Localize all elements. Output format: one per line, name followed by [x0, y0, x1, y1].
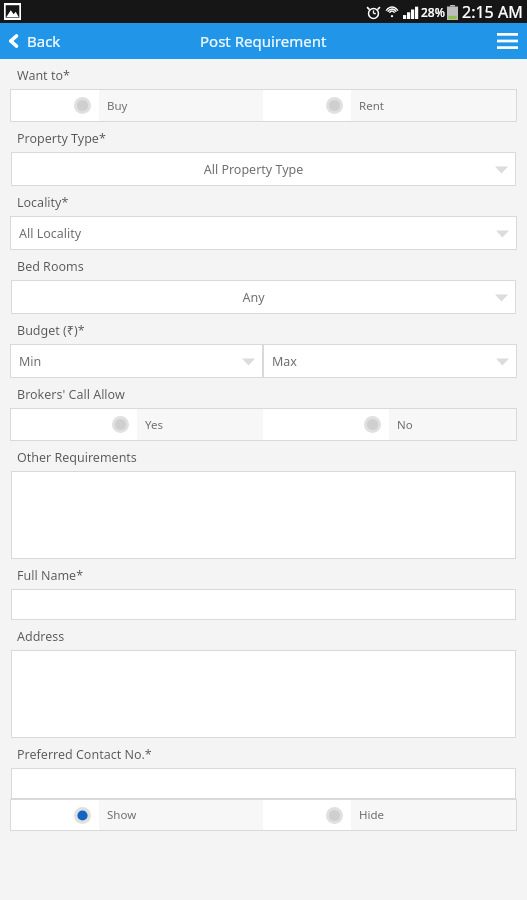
- staticText: Yes: [145, 417, 163, 433]
- staticText: Max: [272, 353, 496, 370]
- staticText: Rent: [359, 98, 384, 114]
- button[interactable]: Show: [11, 800, 263, 830]
- button[interactable]: Max: [264, 345, 516, 377]
- staticText: Hide: [359, 807, 385, 823]
- staticText: Any: [12, 289, 495, 306]
- staticText: No: [397, 417, 413, 433]
- button[interactable]: Buy: [11, 90, 263, 121]
- staticText: Bed Rooms: [17, 258, 84, 275]
- staticText: Preferred Contact No.*: [17, 746, 152, 763]
- staticText: Show: [107, 807, 137, 823]
- staticText: 28%: [421, 4, 445, 20]
- staticText: Post Requirement: [200, 31, 327, 51]
- button[interactable]: Menu: [488, 23, 527, 59]
- button[interactable]: Hide: [263, 800, 516, 830]
- staticText: All Property Type: [12, 161, 495, 178]
- staticText: Min: [19, 353, 242, 370]
- staticText: Back: [27, 31, 61, 51]
- button[interactable]: Rent: [263, 90, 516, 121]
- staticText: Buy: [107, 98, 128, 114]
- button[interactable]: Back: [0, 23, 71, 59]
- staticText: Property Type*: [17, 130, 106, 147]
- button[interactable]: Min: [11, 345, 262, 377]
- button[interactable]: No: [263, 409, 516, 440]
- button[interactable]: All Locality: [11, 217, 516, 249]
- button[interactable]: Yes: [11, 409, 263, 440]
- staticText: Brokers' Call Allow: [17, 386, 125, 403]
- staticText: Locality*: [17, 194, 69, 211]
- button[interactable]: Any: [12, 281, 515, 313]
- staticText: Budget (₹)*: [17, 322, 85, 339]
- staticText: Want to*: [17, 67, 70, 84]
- button[interactable]: All Property Type: [12, 153, 515, 185]
- staticText: 2:15 AM: [462, 1, 523, 23]
- staticText: Other Requirements: [17, 449, 137, 466]
- staticText: Address: [17, 628, 65, 645]
- staticText: All Locality: [19, 225, 496, 242]
- staticText: Full Name*: [17, 567, 84, 584]
